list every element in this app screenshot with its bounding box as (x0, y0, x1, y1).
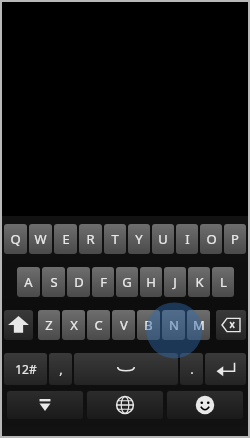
button[interactable]: G (116, 267, 138, 297)
button[interactable]: B (137, 310, 160, 340)
button[interactable]: Z (38, 310, 60, 340)
button[interactable]: P (224, 224, 246, 254)
staticText: V (120, 316, 128, 334)
staticText: C (94, 316, 103, 334)
staticText: T (111, 230, 119, 248)
button[interactable]: M (187, 310, 210, 340)
staticText: W (34, 230, 47, 248)
button[interactable]: O (200, 224, 222, 254)
staticText: J (173, 273, 177, 291)
button[interactable]: Y (128, 224, 150, 254)
button[interactable]: X (62, 310, 85, 340)
button[interactable]: E (54, 224, 77, 254)
staticText: M (193, 316, 205, 334)
staticText: Y (135, 230, 143, 248)
button[interactable]: Enter (205, 353, 246, 385)
button[interactable]: W (29, 224, 52, 254)
button[interactable]: J (164, 267, 186, 297)
button[interactable]: K (188, 267, 210, 297)
staticText: L (220, 273, 227, 291)
staticText: I (185, 230, 190, 248)
button[interactable]: L (212, 267, 234, 297)
button[interactable]: F (92, 267, 114, 297)
button[interactable]: C (87, 310, 110, 340)
staticText: Z (45, 316, 53, 334)
staticText: N (169, 316, 179, 334)
staticText: E (62, 230, 70, 248)
staticText: F (100, 273, 107, 291)
staticText: A (24, 273, 33, 291)
button[interactable]: R (79, 224, 102, 254)
button[interactable]: A (17, 267, 40, 297)
staticText: D (74, 273, 84, 291)
button[interactable]: Hide keyboard (7, 391, 83, 419)
staticText: X (70, 316, 78, 334)
staticText: G (122, 273, 132, 291)
button[interactable]: Backspace (216, 310, 246, 340)
button[interactable]: Shift (4, 310, 33, 340)
button[interactable]: Emoji (167, 391, 243, 419)
button[interactable]: . (180, 353, 203, 385)
staticText: B (144, 316, 153, 334)
button[interactable]: V (112, 310, 135, 340)
button[interactable]: Q (4, 224, 27, 254)
button[interactable]: Change language (87, 391, 163, 419)
staticText: U (158, 230, 168, 248)
staticText: K (195, 273, 204, 291)
staticText: . (190, 360, 194, 378)
button[interactable]: T (104, 224, 126, 254)
button[interactable]: H (140, 267, 162, 297)
button[interactable]: D (67, 267, 90, 297)
button[interactable]: U (152, 224, 174, 254)
button[interactable]: N (162, 310, 185, 340)
button[interactable]: Space (74, 353, 178, 385)
staticText: Q (10, 230, 21, 248)
button[interactable]: 12# (4, 353, 47, 385)
staticText: P (231, 230, 239, 248)
staticText: S (50, 273, 58, 291)
button[interactable]: I (176, 224, 198, 254)
staticText: H (146, 273, 156, 291)
staticText: , (59, 360, 63, 378)
staticText: R (86, 230, 95, 248)
button[interactable]: , (49, 353, 72, 385)
button[interactable]: S (42, 267, 65, 297)
staticText: O (206, 230, 217, 248)
staticText: 12# (15, 361, 37, 377)
